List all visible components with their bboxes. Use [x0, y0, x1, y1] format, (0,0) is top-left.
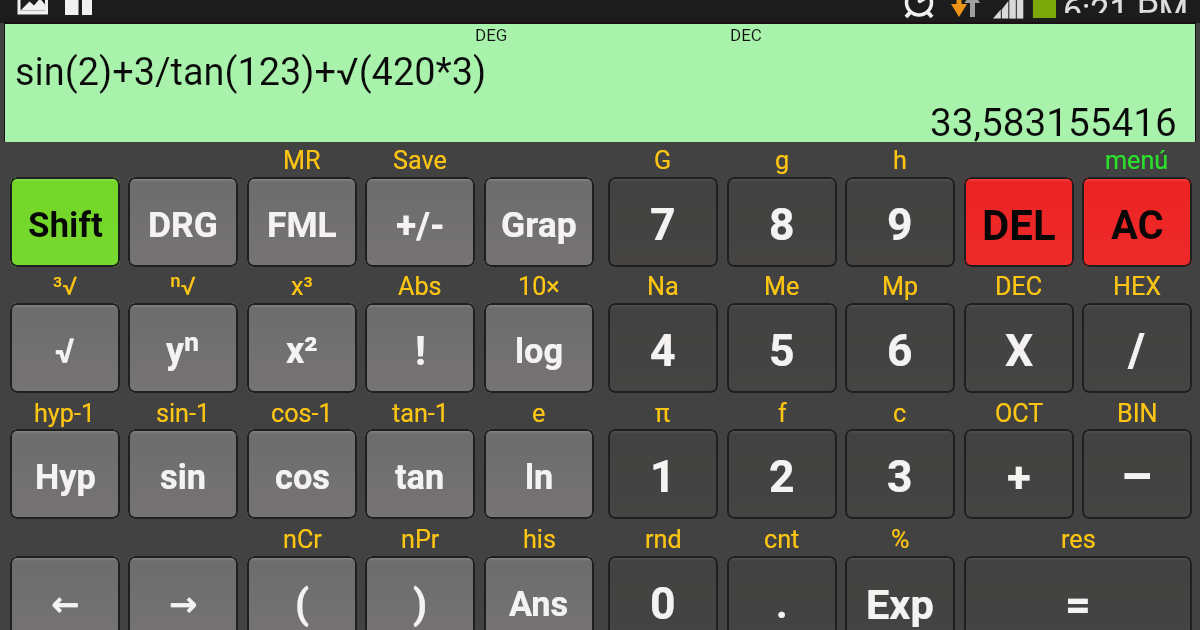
- staticText: √: [55, 331, 75, 371]
- button[interactable]: DEL: [964, 177, 1074, 267]
- staticText: log: [515, 331, 564, 371]
- button[interactable]: 4: [608, 303, 718, 393]
- button[interactable]: 9: [845, 177, 955, 267]
- button[interactable]: x²: [247, 303, 357, 393]
- button[interactable]: Hyp: [10, 429, 120, 519]
- staticText: h: [893, 146, 907, 176]
- staticText: menú: [1105, 146, 1169, 176]
- button[interactable]: ln: [484, 429, 594, 519]
- staticText: yⁿ: [166, 330, 200, 372]
- button[interactable]: 1: [608, 429, 718, 519]
- button[interactable]: –: [1082, 429, 1192, 519]
- button[interactable]: (: [247, 556, 357, 630]
- button[interactable]: FML: [247, 177, 357, 267]
- button[interactable]: log: [484, 303, 594, 393]
- button[interactable]: .: [727, 556, 837, 630]
- button[interactable]: 3: [845, 429, 955, 519]
- staticText: cos: [275, 457, 330, 497]
- button[interactable]: +: [964, 429, 1074, 519]
- staticText: Save: [393, 146, 447, 176]
- staticText: HEX: [1113, 272, 1162, 302]
- staticText: =: [1065, 578, 1091, 630]
- staticText: MR: [283, 146, 321, 176]
- staticText: 1: [650, 451, 676, 503]
- staticText: tan: [395, 457, 445, 497]
- button[interactable]: Ans: [484, 556, 594, 630]
- staticText: ln: [525, 457, 554, 497]
- button[interactable]: X: [964, 303, 1074, 393]
- staticText: .: [776, 581, 788, 628]
- staticText: BIN: [1117, 399, 1158, 429]
- button[interactable]: tan: [365, 429, 475, 519]
- staticText: Mp: [882, 272, 919, 302]
- staticText: DEC: [995, 272, 1043, 302]
- button[interactable]: cos: [247, 429, 357, 519]
- staticText: 0: [650, 578, 676, 630]
- staticText: ³√: [53, 272, 78, 302]
- button[interactable]: 6: [845, 303, 955, 393]
- staticText: 3: [887, 451, 913, 503]
- staticText: FML: [267, 204, 337, 246]
- staticText: 9: [887, 199, 913, 251]
- button[interactable]: square root: [10, 303, 120, 393]
- staticText: x³: [291, 272, 313, 302]
- button[interactable]: Right: [128, 556, 238, 630]
- staticText: cos-1: [271, 399, 333, 429]
- button[interactable]: sin(2)+3/tan(123)+√(420*3): [5, 24, 1195, 142]
- button[interactable]: 8: [727, 177, 837, 267]
- button[interactable]: Left: [10, 556, 120, 630]
- staticText: AC: [1111, 202, 1164, 249]
- staticText: 6:21 PM: [1063, 0, 1189, 13]
- staticText: +/-: [396, 204, 445, 247]
- button[interactable]: AC: [1082, 177, 1192, 267]
- button[interactable]: Shift: [10, 177, 120, 267]
- button[interactable]: 7: [608, 177, 718, 267]
- staticText: %: [891, 525, 910, 555]
- staticText: (: [295, 581, 310, 628]
- staticText: 2: [769, 451, 795, 503]
- staticText: Hyp: [35, 457, 96, 497]
- staticText: DRG: [148, 204, 218, 246]
- staticText: cnt: [764, 525, 800, 555]
- staticText: sin-1: [156, 399, 211, 429]
- staticText: sin: [160, 457, 206, 497]
- staticText: g: [775, 146, 790, 176]
- button[interactable]: +/-: [365, 177, 475, 267]
- staticText: nCr: [283, 525, 322, 555]
- staticText: res: [1061, 525, 1096, 555]
- staticText: Shift: [28, 205, 103, 246]
- staticText: c: [893, 399, 907, 429]
- staticText: DEL: [982, 201, 1056, 250]
- staticText: +: [1007, 452, 1031, 503]
- button[interactable]: 0: [608, 556, 718, 630]
- button[interactable]: sin: [128, 429, 238, 519]
- staticText: x²: [286, 330, 318, 372]
- staticText: G: [654, 146, 672, 176]
- button[interactable]: DRG: [128, 177, 238, 267]
- button[interactable]: !: [365, 303, 475, 393]
- button[interactable]: Exp: [845, 556, 955, 630]
- button[interactable]: 5: [727, 303, 837, 393]
- staticText: rnd: [645, 525, 682, 555]
- staticText: sin(2)+3/tan(123)+√(420*3): [15, 50, 487, 94]
- staticText: nPr: [401, 525, 440, 555]
- staticText: Grap: [501, 204, 577, 246]
- staticText: Ans: [509, 584, 569, 624]
- staticText: hyp-1: [34, 399, 96, 429]
- staticText: f: [778, 399, 787, 429]
- button[interactable]: [4, 22, 1196, 142]
- button[interactable]: /: [1082, 303, 1192, 393]
- staticText: 7: [650, 199, 676, 251]
- staticText: DEG: [475, 25, 508, 45]
- button[interactable]: =: [964, 556, 1192, 630]
- staticText: ⁿ√: [170, 272, 196, 302]
- staticText: 10×: [518, 272, 560, 302]
- button[interactable]: yⁿ: [128, 303, 238, 393]
- button[interactable]: 2: [727, 429, 837, 519]
- button[interactable]: ): [365, 556, 475, 630]
- staticText: his: [523, 525, 556, 555]
- button[interactable]: Grap: [484, 177, 594, 267]
- staticText: 4: [650, 325, 676, 377]
- staticText: Abs: [398, 272, 442, 302]
- staticText: –: [1121, 448, 1153, 507]
